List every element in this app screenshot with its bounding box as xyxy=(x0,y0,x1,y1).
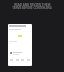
staticText: READ AND REVIEW THESE xyxy=(14,3,51,7)
staticText: TERMS BEFORE CONTINUING xyxy=(12,6,52,10)
